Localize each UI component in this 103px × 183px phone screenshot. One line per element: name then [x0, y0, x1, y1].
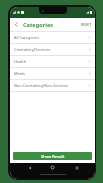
button[interactable]: Show Result	[13, 152, 92, 160]
button[interactable]: All Categories	[10, 32, 95, 43]
staticText: RESET	[81, 22, 92, 27]
staticText: All Categories	[14, 35, 88, 40]
button[interactable]: Home	[48, 163, 57, 172]
staticText: Health	[14, 59, 88, 64]
button[interactable]: Recent apps	[72, 163, 81, 172]
button[interactable]: RESET	[78, 20, 95, 29]
staticText: Categories	[23, 21, 54, 29]
staticText: Non-Caretaking/Non-Services	[14, 83, 88, 88]
staticText: Meals	[14, 71, 88, 76]
button[interactable]: Non-Caretaking/Non-Services	[10, 80, 95, 91]
button[interactable]: Health	[10, 56, 95, 67]
button[interactable]: Back	[11, 19, 22, 30]
button[interactable]: Caretaking/Services	[10, 44, 95, 55]
staticText: Caretaking/Services	[14, 47, 88, 52]
staticText: Show Result	[41, 154, 65, 159]
button[interactable]: Meals	[10, 68, 95, 79]
button[interactable]: Back	[25, 163, 34, 172]
